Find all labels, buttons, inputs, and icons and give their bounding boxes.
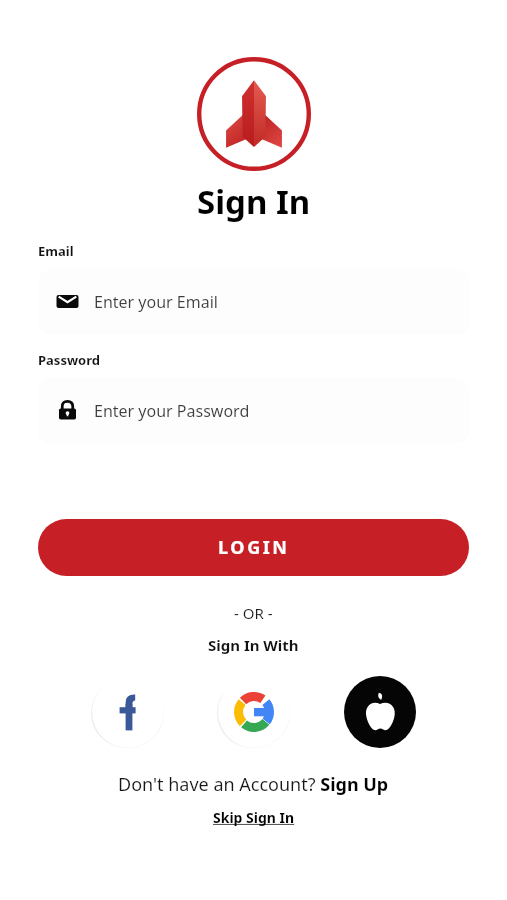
staticText: Password (38, 351, 100, 369)
button[interactable]: Don't have an Account? Sign Up (118, 772, 389, 797)
staticText: Enter your Password (94, 400, 250, 422)
button[interactable]: Sign in with Facebook (92, 676, 164, 748)
staticText: LOGIN (218, 535, 290, 560)
button[interactable]: LOGIN (38, 519, 469, 576)
staticText: Don't have an Account? Sign Up (118, 772, 389, 797)
button[interactable]: Sign in with Google (218, 676, 290, 748)
staticText: Enter your Email (94, 291, 218, 313)
staticText: - OR - (234, 603, 273, 623)
staticText: Sign In With (208, 635, 299, 655)
staticText: Skip Sign In (213, 808, 295, 827)
button[interactable]: Skip Sign In (213, 808, 295, 827)
staticText: Sign In (197, 179, 311, 224)
button[interactable]: Sign in with Apple (344, 676, 416, 748)
button[interactable]: Enter your Password (38, 378, 469, 443)
staticText: Email (38, 242, 74, 260)
button[interactable]: Enter your Email (38, 269, 469, 334)
